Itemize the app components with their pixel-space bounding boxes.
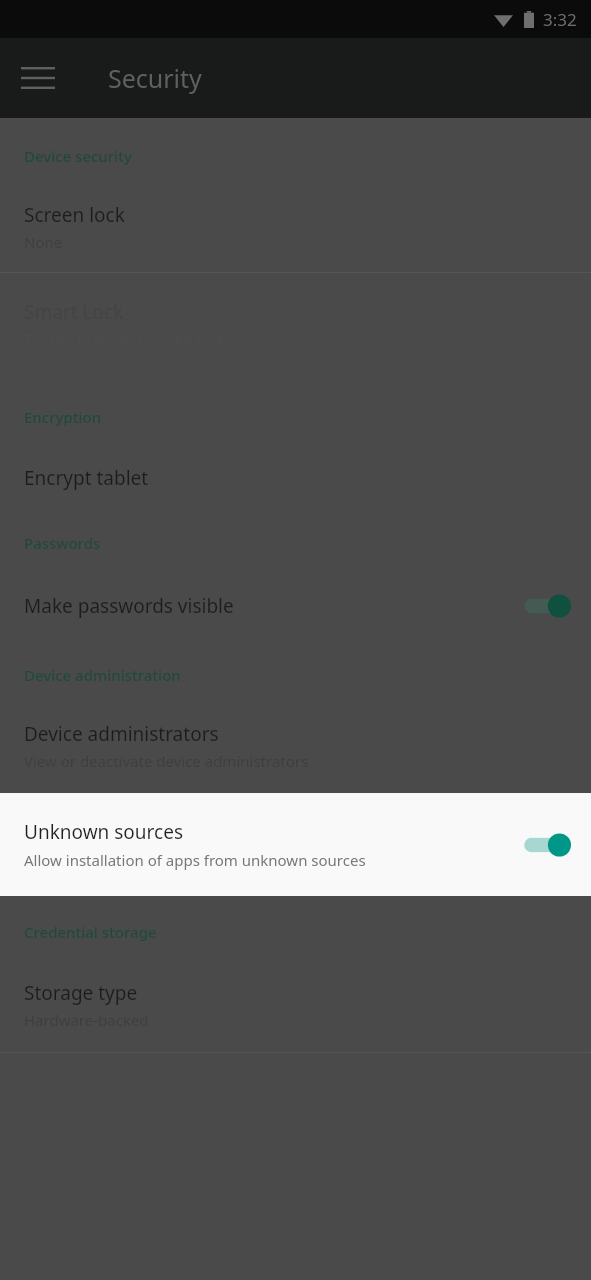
staticText: Credential storage bbox=[24, 922, 157, 942]
staticText: Storage type bbox=[24, 980, 138, 1006]
staticText: Make passwords visible bbox=[24, 593, 234, 619]
button[interactable]: Toggle on bbox=[519, 828, 571, 862]
staticText: Screen lock bbox=[24, 202, 125, 228]
button[interactable]: Encrypt tablet bbox=[0, 427, 591, 511]
staticText: Passwords bbox=[24, 533, 101, 553]
button[interactable]: Toggle on bbox=[519, 589, 571, 623]
staticText: Encryption bbox=[24, 407, 102, 427]
button[interactable]: Make passwords visible bbox=[0, 553, 591, 643]
button[interactable]: Unknown sources bbox=[0, 793, 591, 896]
button[interactable]: Open navigation drawer bbox=[10, 50, 66, 106]
staticText: Unknown sources bbox=[24, 819, 183, 845]
staticText: 3:32 bbox=[543, 8, 577, 31]
button[interactable]: Device administrators bbox=[0, 685, 591, 793]
staticText: Encrypt tablet bbox=[24, 465, 149, 491]
staticText: Device security bbox=[24, 146, 132, 166]
staticText: Device administrators bbox=[24, 721, 219, 747]
staticText: Security bbox=[108, 61, 202, 95]
button[interactable]: Storage type bbox=[0, 942, 591, 1052]
staticText: Allow installation of apps from unknown … bbox=[24, 850, 449, 870]
staticText: Device administration bbox=[24, 665, 181, 685]
